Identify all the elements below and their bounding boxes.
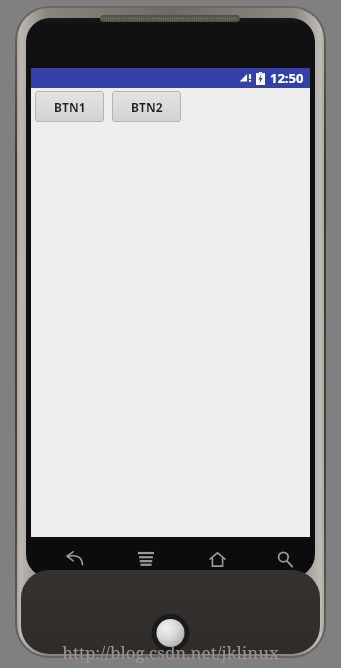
button[interactable]: Home [190, 543, 244, 575]
button[interactable]: Search [258, 543, 312, 575]
staticText: BTN1 [54, 99, 86, 115]
button[interactable]: Back [48, 543, 102, 575]
staticText: 12:50 [270, 69, 304, 87]
staticText: http://blog.csdn.net/jklinux [0, 641, 341, 664]
button[interactable]: Menu [119, 543, 173, 575]
button[interactable]: BTN2 [112, 91, 181, 122]
button[interactable]: BTN1 [35, 91, 104, 122]
staticText: BTN2 [131, 99, 163, 115]
